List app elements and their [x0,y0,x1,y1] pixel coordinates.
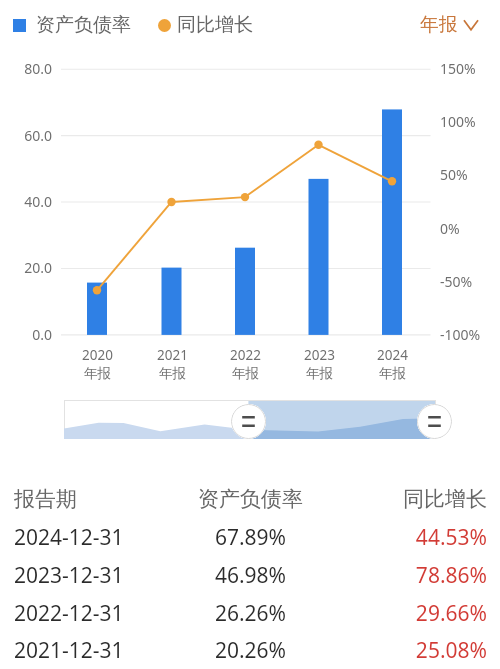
staticText: 60.0 [0,126,52,145]
button[interactable]: 2024-12-31 [14,518,487,556]
staticText: 2021-12-31 [14,636,169,665]
staticText: 29.66% [332,599,487,628]
staticText: 2024 [377,346,408,364]
staticText: 年报 [84,365,111,382]
button[interactable]: Range start handle [231,404,266,439]
staticText: 0% [440,219,460,238]
staticText: 同比增长 [332,486,487,512]
staticText: 资产负债率 [169,486,332,512]
staticText: 40.0 [0,192,52,211]
staticText: 年报 [159,365,186,382]
staticText: 67.89% [169,523,332,552]
staticText: 20.26% [169,636,332,665]
staticText: 2024-12-31 [14,523,169,552]
button[interactable]: 2021-12-31 [14,632,487,669]
staticText: 2022-12-31 [14,599,169,628]
staticText: 2021 [157,346,188,364]
staticText: 26.26% [169,599,332,628]
staticText: 2023-12-31 [14,561,169,590]
staticText: 同比增长 [177,13,253,37]
staticText: 50% [440,165,468,184]
staticText: -100% [440,325,481,344]
staticText: 20.0 [0,258,52,277]
button[interactable]: Data zoom range [64,400,436,439]
staticText: 资产负债率 [36,13,131,37]
staticText: 100% [440,112,476,131]
button[interactable]: 年报 [420,13,479,37]
button[interactable]: 2022-12-31 [14,594,487,632]
staticText: 年报 [420,13,458,37]
button[interactable]: 2023-12-31 [14,556,487,594]
staticText: 25.08% [332,636,487,665]
staticText: 44.53% [332,523,487,552]
staticText: -50% [440,272,473,291]
staticText: 2022 [230,346,261,364]
button[interactable]: Range end handle [417,404,452,439]
staticText: 150% [440,59,476,78]
staticText: 0.0 [0,325,52,344]
staticText: 2023 [304,346,335,364]
staticText: 年报 [232,365,259,382]
staticText: 2020 [82,346,113,364]
staticText: 报告期 [14,486,169,512]
staticText: 年报 [306,365,333,382]
staticText: 46.98% [169,561,332,590]
staticText: 年报 [379,365,406,382]
staticText: 80.0 [0,59,52,78]
staticText: 78.86% [332,561,487,590]
